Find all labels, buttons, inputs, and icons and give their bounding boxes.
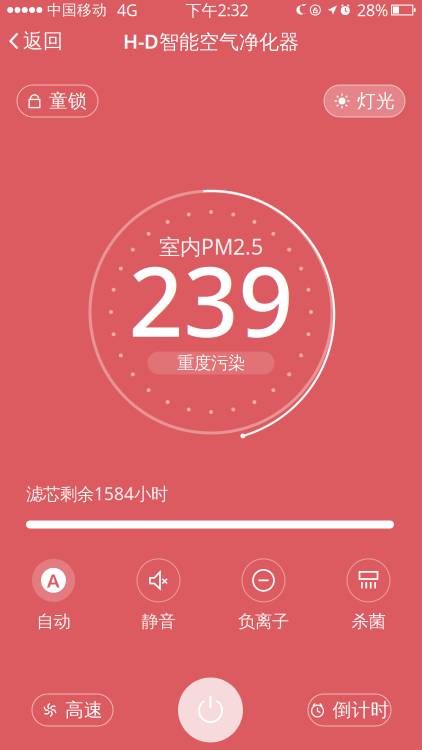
staticText: 静音 (141, 611, 175, 632)
staticText: 杀菌 (351, 611, 385, 632)
staticText: 返回 (23, 29, 63, 53)
button[interactable]: 童锁 (17, 85, 98, 117)
staticText: 倒计时 (332, 698, 389, 721)
staticText: 中国移动 (47, 1, 107, 19)
button[interactable]: 倒计时 (308, 694, 391, 726)
staticText: H-D智能空气净化器 (123, 28, 299, 54)
staticText: 自动 (36, 611, 70, 632)
staticText: 负离子 (238, 611, 289, 632)
staticText: 4G (117, 0, 138, 21)
staticText: 下午2:32 (185, 0, 248, 21)
staticText: 灯光 (357, 89, 395, 112)
button[interactable]: 杀菌 (316, 559, 421, 631)
button[interactable]: 高速 (32, 694, 113, 726)
button[interactable]: A (1, 559, 106, 631)
staticText: 28% (357, 0, 388, 21)
button[interactable]: 静音 (106, 559, 211, 631)
button[interactable]: Power (178, 677, 243, 742)
staticText: 239 (128, 236, 293, 363)
button[interactable]: 灯光 (324, 85, 405, 117)
staticText: 高速 (65, 698, 103, 721)
staticText: 室内PM2.5 (159, 232, 263, 261)
staticText: A (47, 568, 60, 593)
staticText: 重度污染 (177, 352, 245, 374)
staticText: 童锁 (49, 89, 87, 112)
staticText: 滤芯剩余1584小时 (26, 482, 168, 505)
button[interactable]: 返回 (0, 23, 72, 59)
button[interactable]: 负离子 (211, 559, 316, 631)
